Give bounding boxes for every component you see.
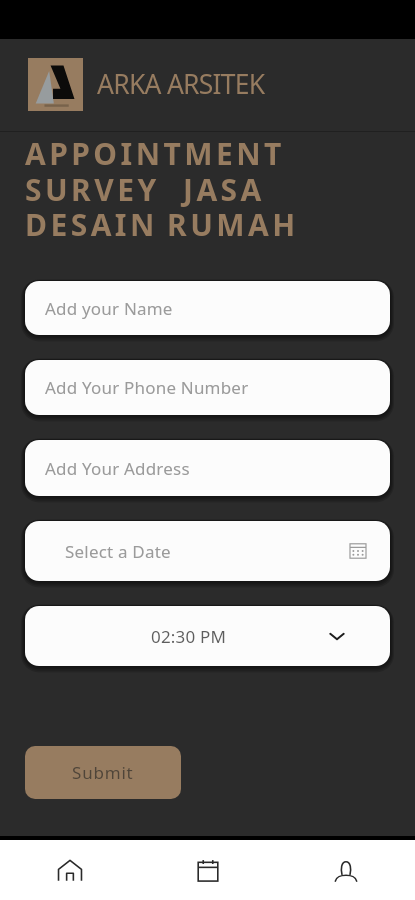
- button[interactable]: 02:30 PM: [25, 606, 390, 666]
- button[interactable]: Profile: [277, 840, 415, 900]
- staticText: JASA: [183, 169, 265, 210]
- button[interactable]: Add Your Address: [25, 440, 390, 496]
- button[interactable]: Submit: [25, 746, 181, 799]
- staticText: 02:30 PM: [151, 625, 227, 648]
- staticText: APPOINTMENT: [25, 133, 285, 174]
- button[interactable]: Calendar: [139, 840, 277, 900]
- staticText: DESAIN: [25, 204, 158, 245]
- button[interactable]: Add your Name: [25, 281, 390, 335]
- staticText: Select a Date: [65, 540, 171, 563]
- button[interactable]: Add Your Phone Number: [25, 360, 390, 415]
- staticText: ARKA ARSITEK: [97, 66, 265, 102]
- button[interactable]: Select a Date: [25, 521, 390, 581]
- staticText: Submit: [72, 761, 134, 784]
- staticText: SURVEY: [25, 169, 160, 210]
- staticText: Add Your Address: [45, 457, 190, 480]
- staticText: RUMAH: [167, 204, 299, 245]
- staticText: Add your Name: [45, 297, 173, 320]
- button[interactable]: Home: [0, 840, 139, 900]
- staticText: Add Your Phone Number: [45, 376, 249, 399]
